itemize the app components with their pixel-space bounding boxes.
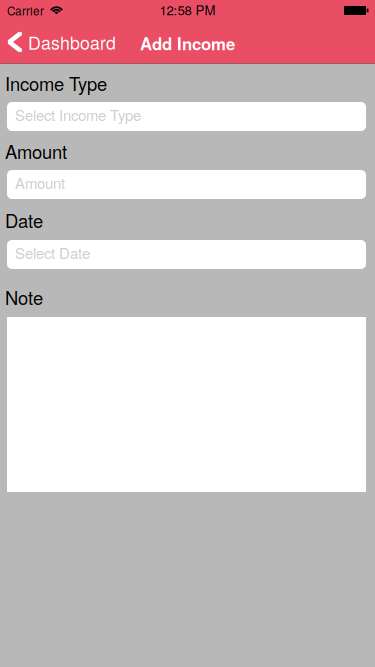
staticText: Income Type <box>5 70 107 96</box>
staticText: Amount <box>15 172 65 193</box>
staticText: Add Income <box>140 31 235 56</box>
staticText: Carrier <box>7 2 44 19</box>
staticText: Date <box>5 207 43 233</box>
button[interactable]: Select Income Type <box>7 102 366 131</box>
staticText: Select Income Type <box>15 104 141 125</box>
staticText: Dashboard <box>28 29 116 55</box>
button[interactable]: Select Date <box>7 240 366 269</box>
button[interactable]: Dashboard <box>0 20 126 64</box>
staticText: Select Date <box>15 242 90 263</box>
staticText: 12:58 PM <box>159 0 215 19</box>
button[interactable]: Amount <box>7 170 366 199</box>
staticText: Note <box>5 284 43 310</box>
staticText: Amount <box>5 138 67 164</box>
